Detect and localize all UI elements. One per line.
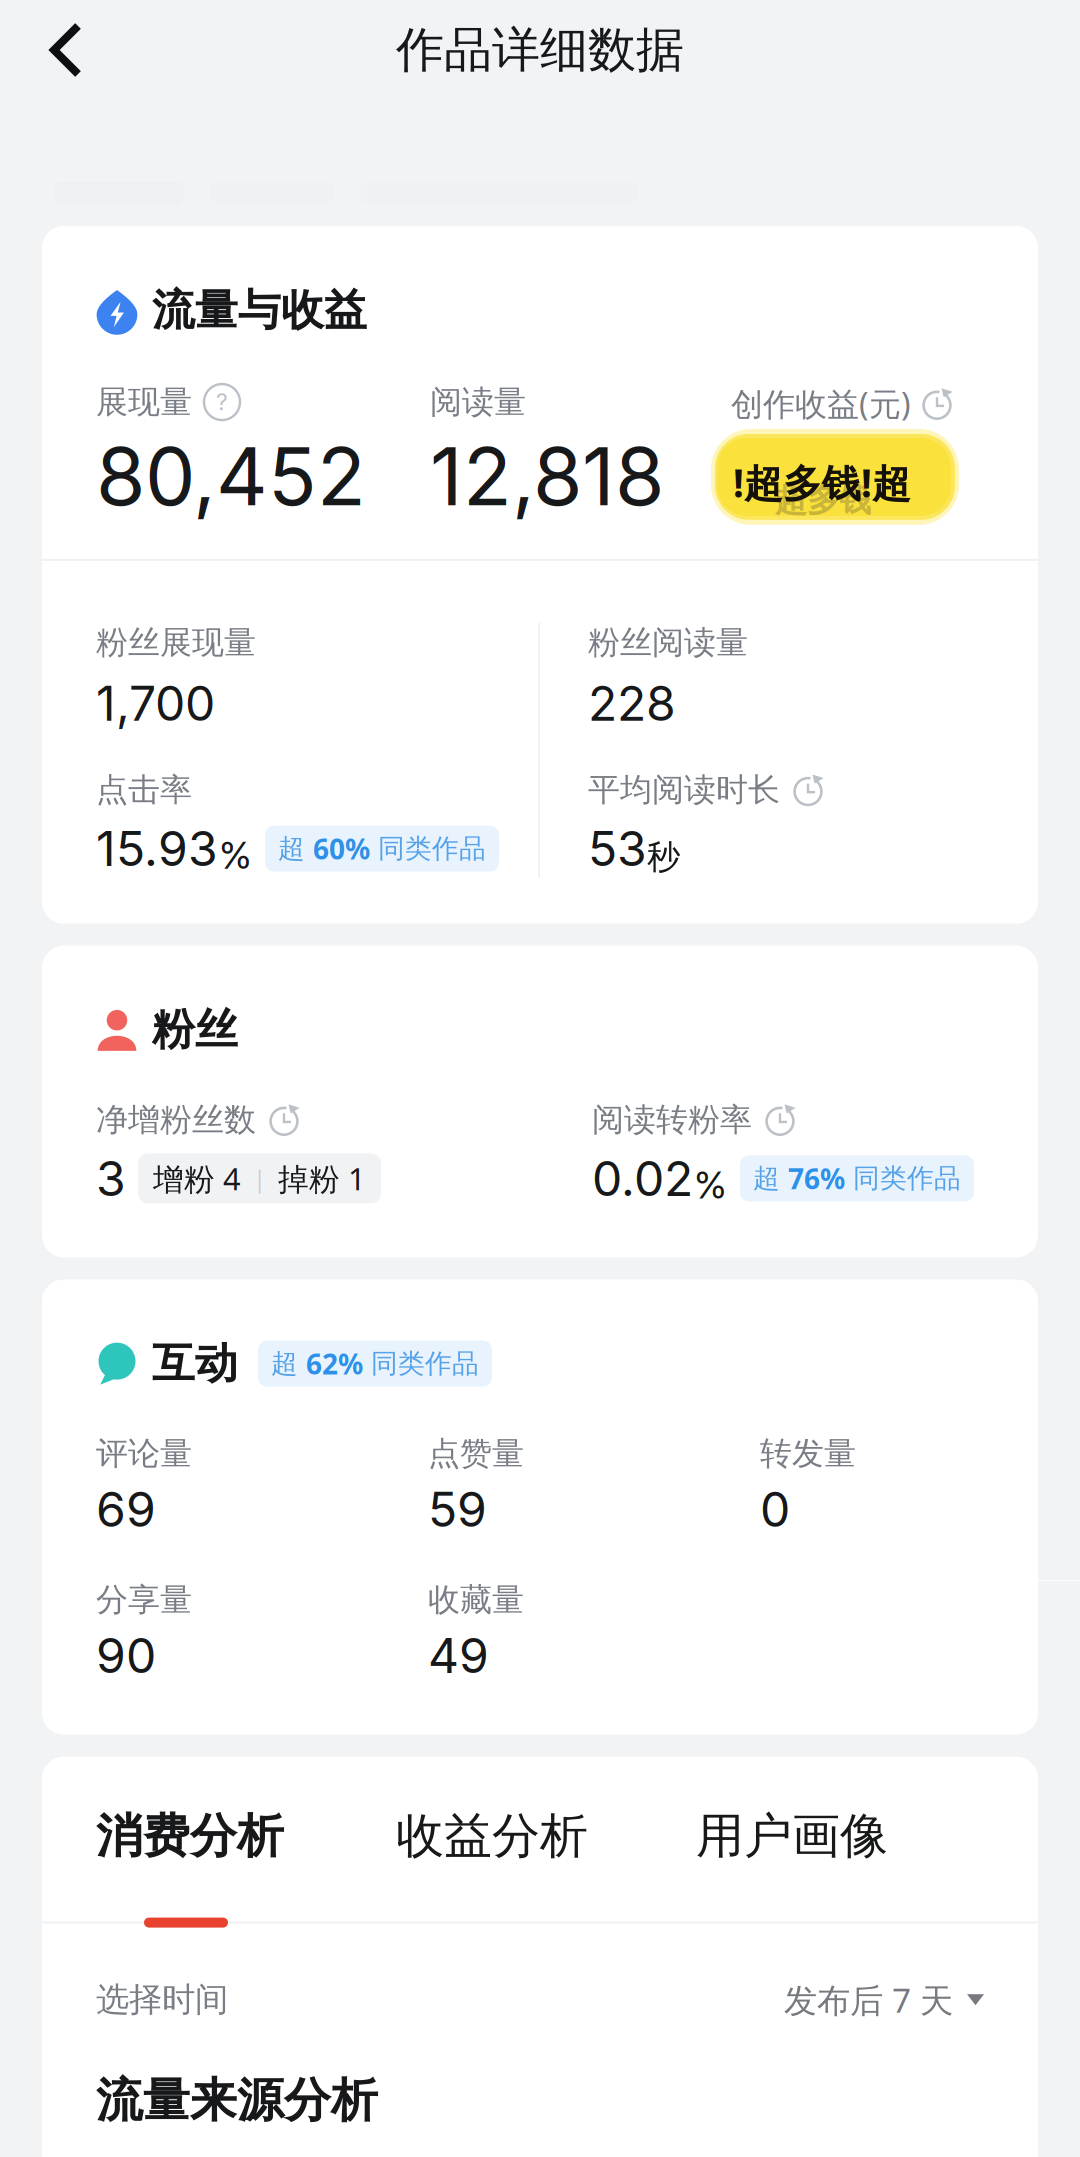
staticText: 转发量 [760, 1434, 856, 1473]
staticText: 流量与收益 [152, 284, 367, 336]
staticText: 超 [271, 1347, 306, 1380]
staticText: 0.02 [592, 1149, 693, 1207]
staticText: 净增粉丝数 [96, 1100, 256, 1139]
staticText: 62% [306, 1345, 363, 1382]
button[interactable]: 发布后 7 天 [784, 1978, 984, 2022]
staticText: 超 [753, 1162, 788, 1195]
staticText: 69 [96, 1480, 156, 1538]
staticText: % [694, 1162, 727, 1207]
staticText: 作品详细数据 [396, 20, 684, 79]
staticText: 粉丝阅读量 [588, 623, 748, 662]
staticText: 同类作品 [370, 832, 486, 865]
staticText: 秒 [647, 837, 680, 878]
staticText: 收藏量 [428, 1580, 524, 1619]
staticText: 粉丝展现量 [96, 623, 256, 662]
staticText: 点赞量 [428, 1434, 524, 1473]
staticText: 流量来源分析 [96, 2072, 378, 2129]
staticText: 创作收益(元) [731, 382, 911, 425]
staticText: 发布后 7 天 [784, 1978, 953, 2022]
staticText: 点击率 [96, 770, 192, 810]
button[interactable]: 收益分析 [396, 1807, 696, 1866]
staticText: 阅读量 [430, 382, 526, 422]
staticText: 阅读转粉率 [592, 1100, 752, 1139]
staticText: 同类作品 [845, 1162, 961, 1195]
staticText: 掉粉 1 [278, 1158, 366, 1199]
staticText: 收益分析 [396, 1807, 588, 1866]
staticText: 76% [788, 1160, 845, 1197]
staticText: 评论量 [96, 1434, 192, 1473]
staticText: 分享量 [96, 1580, 192, 1619]
staticText: 0 [760, 1480, 790, 1538]
staticText: 选择时间 [96, 1979, 228, 2020]
button[interactable]: 消费分析 [96, 1807, 396, 1865]
staticText: 超多钱 [775, 481, 871, 520]
staticText: 用户画像 [696, 1807, 888, 1866]
staticText: 粉丝 [152, 1004, 238, 1056]
staticText: 228 [588, 674, 676, 732]
staticText: 80,452 [96, 428, 366, 524]
staticText: !超多钱!超 [733, 457, 911, 508]
staticText: 53 [588, 820, 647, 878]
button[interactable]: 用户画像 [696, 1807, 996, 1866]
button[interactable]: 返回 [0, 0, 108, 100]
staticText: % [219, 832, 252, 878]
staticText: 59 [428, 1480, 487, 1538]
staticText: 12,818 [430, 428, 664, 524]
staticText: 展现量 [96, 382, 192, 422]
staticText: 1,700 [96, 674, 215, 732]
staticText: | [241, 1162, 278, 1194]
staticText: 60% [313, 830, 370, 867]
staticText: ? [216, 388, 228, 416]
staticText: 15.93 [96, 820, 218, 878]
staticText: 3 [96, 1149, 126, 1207]
staticText: 超 [278, 832, 313, 865]
staticText: 同类作品 [363, 1347, 479, 1380]
staticText: 消费分析 [96, 1807, 284, 1865]
staticText: 49 [428, 1627, 489, 1685]
staticText: 90 [96, 1627, 156, 1685]
staticText: 增粉 4 [153, 1158, 241, 1199]
staticText: 互动 [152, 1337, 238, 1390]
staticText: 平均阅读时长 [588, 770, 780, 810]
